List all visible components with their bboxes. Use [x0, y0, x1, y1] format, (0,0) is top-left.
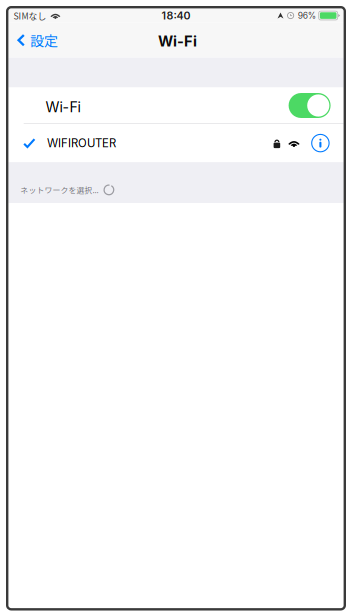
staticText: ネットワークを選択... [20, 184, 98, 196]
staticText: WIFIROUTER [47, 136, 116, 150]
button[interactable]: 設定 [8, 22, 64, 58]
button[interactable]: WIFIROUTER [8, 124, 344, 162]
staticText: Wi-Fi [45, 98, 80, 115]
staticText: SIMなし [13, 9, 46, 22]
staticText: Wi-Fi [158, 32, 197, 50]
staticText: 設定 [30, 30, 58, 50]
staticText: 18:40 [161, 9, 190, 22]
staticText: 96% [298, 10, 316, 21]
button[interactable]: Wi-Fi on [289, 93, 331, 118]
